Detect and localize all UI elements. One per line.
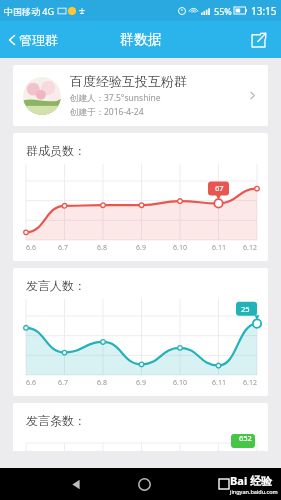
staticText: 创建人：37.5°sunshine [70, 92, 161, 104]
staticText: 13:15 [251, 4, 277, 18]
staticText: 67 [215, 183, 224, 193]
staticText: 群成员数： [26, 143, 86, 158]
staticText: Bai 经验 [230, 473, 273, 488]
staticText: 6.8 [97, 378, 107, 388]
staticText: 6.12 [243, 378, 257, 388]
staticText: 55% [214, 5, 232, 17]
button[interactable]: Share [245, 27, 271, 53]
staticText: 652 [239, 433, 252, 443]
staticText: 6.6 [26, 243, 36, 253]
staticText: 发言条数： [26, 413, 86, 428]
staticText: 6.9 [136, 378, 146, 388]
staticText: 6.8 [97, 243, 107, 253]
staticText: 管理群 [19, 32, 58, 48]
button[interactable]: 百度经验互投互粉群 [13, 65, 268, 126]
button[interactable]: Back [62, 470, 90, 498]
staticText: 6.10 [173, 378, 187, 388]
button[interactable]: Home [130, 470, 158, 498]
staticText: 6.10 [173, 243, 187, 253]
staticText: jingyan.baidu.com [230, 488, 278, 495]
staticText: 6.12 [243, 243, 257, 253]
button[interactable]: 发言人数： [13, 268, 268, 396]
staticText: 6.7 [58, 378, 68, 388]
staticText: 6.6 [26, 378, 36, 388]
staticText: 中国移动 4G [4, 5, 55, 17]
button[interactable]: 管理群 [5, 21, 58, 58]
button[interactable]: 群成员数： [13, 133, 268, 261]
staticText: 6.7 [58, 243, 68, 253]
staticText: 创建于：2016-4-24 [70, 106, 144, 118]
staticText: 25 [241, 304, 250, 314]
staticText: 6.9 [136, 243, 146, 253]
staticText: 发言人数： [26, 278, 86, 293]
button[interactable]: 发言条数： [13, 403, 268, 451]
staticText: 群数据 [120, 31, 162, 49]
staticText: 百度经验互投互粉群 [70, 73, 187, 89]
staticText: 6.11 [212, 243, 226, 253]
staticText: 6.11 [212, 378, 226, 388]
